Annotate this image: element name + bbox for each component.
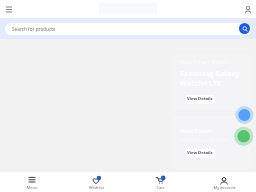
button[interactable]: View Details [185, 149, 215, 158]
staticText: Watch4 LTE [180, 78, 222, 88]
staticText: View Details [187, 150, 213, 156]
button[interactable]: View Details [185, 95, 215, 104]
button[interactable]: Account [242, 4, 253, 15]
button[interactable]: My account [192, 172, 256, 192]
button[interactable]: Search for products [5, 23, 251, 35]
staticText: Wishlist [89, 185, 104, 191]
staticText: Samsung Galaxy [180, 68, 240, 78]
staticText: View Details [187, 96, 213, 102]
staticText: Search for products [12, 26, 56, 32]
staticText: Menu [26, 185, 38, 191]
button[interactable]: Search [239, 23, 250, 34]
button[interactable]: New Smart Watch [174, 54, 250, 111]
button[interactable]: Wishlist [64, 172, 128, 192]
button[interactable]: New Tablet [174, 116, 250, 170]
button[interactable]: Menu [0, 172, 64, 192]
staticText: Cart [156, 185, 165, 191]
staticText: My account [213, 185, 236, 191]
button[interactable]: Cart [128, 172, 192, 192]
staticText: New Tablet [180, 127, 213, 135]
button[interactable]: Open navigation menu [3, 4, 14, 15]
